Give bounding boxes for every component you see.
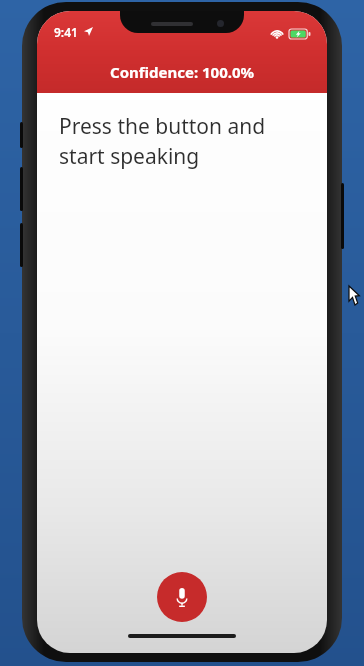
staticText: Confidence: 100.0%	[110, 62, 255, 82]
button[interactable]: Start speaking	[157, 572, 207, 622]
staticText: Press the button and start speaking	[59, 112, 266, 170]
staticText: 9:41	[54, 24, 78, 40]
